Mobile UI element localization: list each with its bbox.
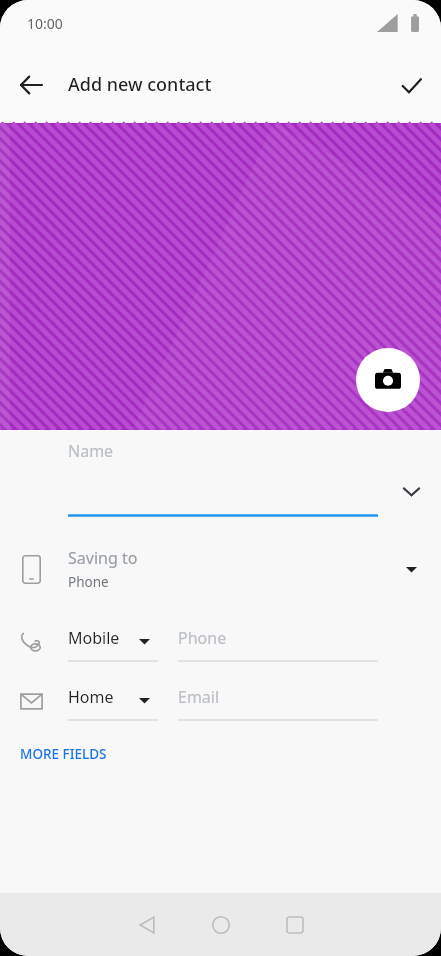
button[interactable]: Mobile: [62, 621, 164, 667]
staticText: Mobile: [68, 627, 120, 649]
button[interactable]: Recent apps: [258, 893, 332, 956]
other: Phone number: [20, 631, 43, 654]
button[interactable]: Back: [110, 893, 184, 956]
staticText: Phone: [68, 573, 109, 591]
button[interactable]: Email: [172, 680, 382, 726]
staticText: Home: [68, 686, 114, 708]
button[interactable]: Contact photo: [0, 123, 441, 430]
button[interactable]: MORE FIELDS: [10, 733, 117, 775]
button[interactable]: Take photo: [356, 348, 420, 412]
button[interactable]: Home: [62, 680, 164, 726]
button[interactable]: Expand name fields: [390, 470, 432, 512]
button[interactable]: Name: [0, 430, 441, 522]
button[interactable]: Phone: [172, 621, 382, 667]
staticText: Add new contact: [68, 72, 212, 97]
staticText: 10:00: [27, 14, 63, 33]
other: Email address: [20, 690, 43, 713]
button[interactable]: Change account: [390, 548, 432, 590]
staticText: Saving to: [68, 547, 138, 569]
button[interactable]: Home: [184, 893, 258, 956]
button[interactable]: Saving to: [0, 535, 441, 605]
staticText: Email: [178, 686, 220, 708]
staticText: Phone: [178, 627, 227, 649]
button[interactable]: Save contact: [389, 63, 433, 107]
button[interactable]: Back: [9, 63, 53, 107]
staticText: MORE FIELDS: [20, 745, 107, 763]
staticText: Name: [68, 440, 114, 462]
